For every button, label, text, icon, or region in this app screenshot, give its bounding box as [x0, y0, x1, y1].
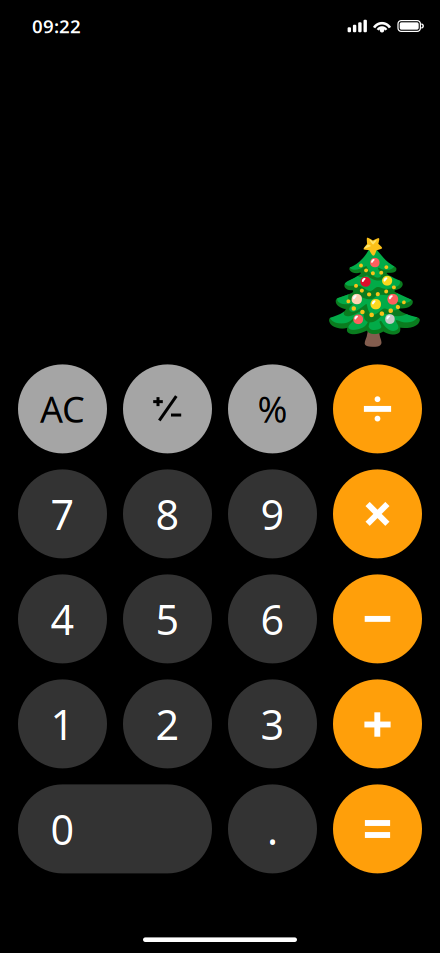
button[interactable]: Minus: [333, 574, 422, 663]
button[interactable]: AC: [18, 364, 107, 453]
staticText: 09:22: [32, 14, 81, 38]
staticText: 4: [50, 591, 74, 646]
staticText: 7: [50, 486, 74, 541]
staticText: 8: [155, 486, 179, 541]
button[interactable]: 2: [123, 679, 212, 768]
staticText: 5: [155, 591, 179, 646]
button[interactable]: Plus minus: [123, 364, 212, 453]
staticText: 0: [50, 801, 74, 856]
staticText: 2: [155, 696, 179, 751]
staticText: 3: [260, 696, 284, 751]
button[interactable]: 3: [228, 679, 317, 768]
staticText: 6: [260, 591, 284, 646]
button[interactable]: Plus: [333, 679, 422, 768]
button[interactable]: .: [228, 784, 317, 873]
button[interactable]: 0: [18, 784, 212, 873]
button[interactable]: 6: [228, 574, 317, 663]
staticText: AC: [40, 385, 85, 433]
staticText: 9: [260, 486, 284, 541]
button[interactable]: Equals: [333, 784, 422, 873]
button[interactable]: %: [228, 364, 317, 453]
button[interactable]: 7: [18, 469, 107, 558]
button[interactable]: Divide: [333, 364, 422, 453]
staticText: .: [267, 801, 278, 856]
staticText: 1: [50, 696, 74, 751]
button[interactable]: 1: [18, 679, 107, 768]
button[interactable]: 9: [228, 469, 317, 558]
staticText: 🎄: [312, 236, 435, 348]
button[interactable]: Multiply: [333, 469, 422, 558]
button[interactable]: 5: [123, 574, 212, 663]
button[interactable]: 4: [18, 574, 107, 663]
button[interactable]: 8: [123, 469, 212, 558]
staticText: %: [257, 385, 287, 433]
